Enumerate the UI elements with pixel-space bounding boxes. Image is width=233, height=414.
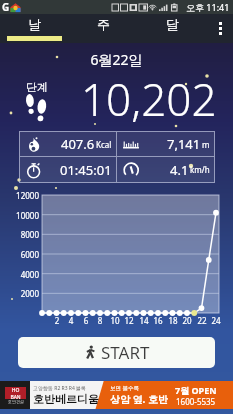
button[interactable]: 날 <box>0 14 69 43</box>
staticText: 16 <box>150 315 166 326</box>
staticText: 달 <box>166 16 179 32</box>
staticText: 주 <box>97 16 110 32</box>
staticText: 호반베르디움 <box>33 392 99 406</box>
staticText: 6000 <box>1 249 39 260</box>
staticText: 호반건설 <box>8 399 24 404</box>
staticText: Kcal <box>96 139 112 150</box>
button[interactable]: HO BAN <box>0 381 233 409</box>
staticText: HO BAN <box>10 387 21 399</box>
staticText: 1600-5535 <box>176 396 216 407</box>
staticText: 18 <box>165 315 181 326</box>
staticText: 4.1 <box>170 161 189 179</box>
button[interactable]: 달 <box>138 14 207 43</box>
staticText: 단계 <box>26 80 48 94</box>
staticText: 10 <box>107 315 123 326</box>
staticText: 고양향동 R2 R3 R4 블록 <box>33 385 87 392</box>
button[interactable]: 주 <box>69 14 138 43</box>
staticText: 8000 <box>1 229 39 240</box>
staticText: km/h <box>190 164 210 175</box>
staticText: 2000 <box>1 288 39 299</box>
staticText: 6월22일 <box>0 50 233 69</box>
staticText: 8 <box>92 315 108 326</box>
staticText: m <box>202 139 210 150</box>
staticText: 12 <box>121 315 137 326</box>
staticText: 6 <box>78 315 94 326</box>
staticText: 10,202 <box>81 69 217 129</box>
staticText: 2 <box>49 315 65 326</box>
staticText: 20 <box>179 315 195 326</box>
button[interactable]: START <box>18 337 215 368</box>
staticText: 14 <box>136 315 152 326</box>
staticText: 24 <box>208 315 224 326</box>
staticText: START <box>101 341 150 364</box>
staticText: 01:45:01 <box>60 161 112 179</box>
staticText: 보면 볼수록 <box>110 384 139 392</box>
staticText: 12000 <box>1 190 39 201</box>
staticText: 22 <box>194 315 210 326</box>
button[interactable]: More options <box>207 14 233 43</box>
staticText: 407.6 <box>61 135 95 153</box>
staticText: 4 <box>63 315 79 326</box>
staticText: 7,141 <box>167 135 201 153</box>
staticText: 4000 <box>1 269 39 280</box>
staticText: 오후 11:41 <box>186 1 230 13</box>
staticText: 7월 OPEN <box>175 384 217 396</box>
staticText: 10000 <box>1 210 39 221</box>
staticText: 상암 옆. 호반 <box>110 392 169 406</box>
staticText: 날 <box>28 16 41 32</box>
staticText: G <box>2 0 10 14</box>
